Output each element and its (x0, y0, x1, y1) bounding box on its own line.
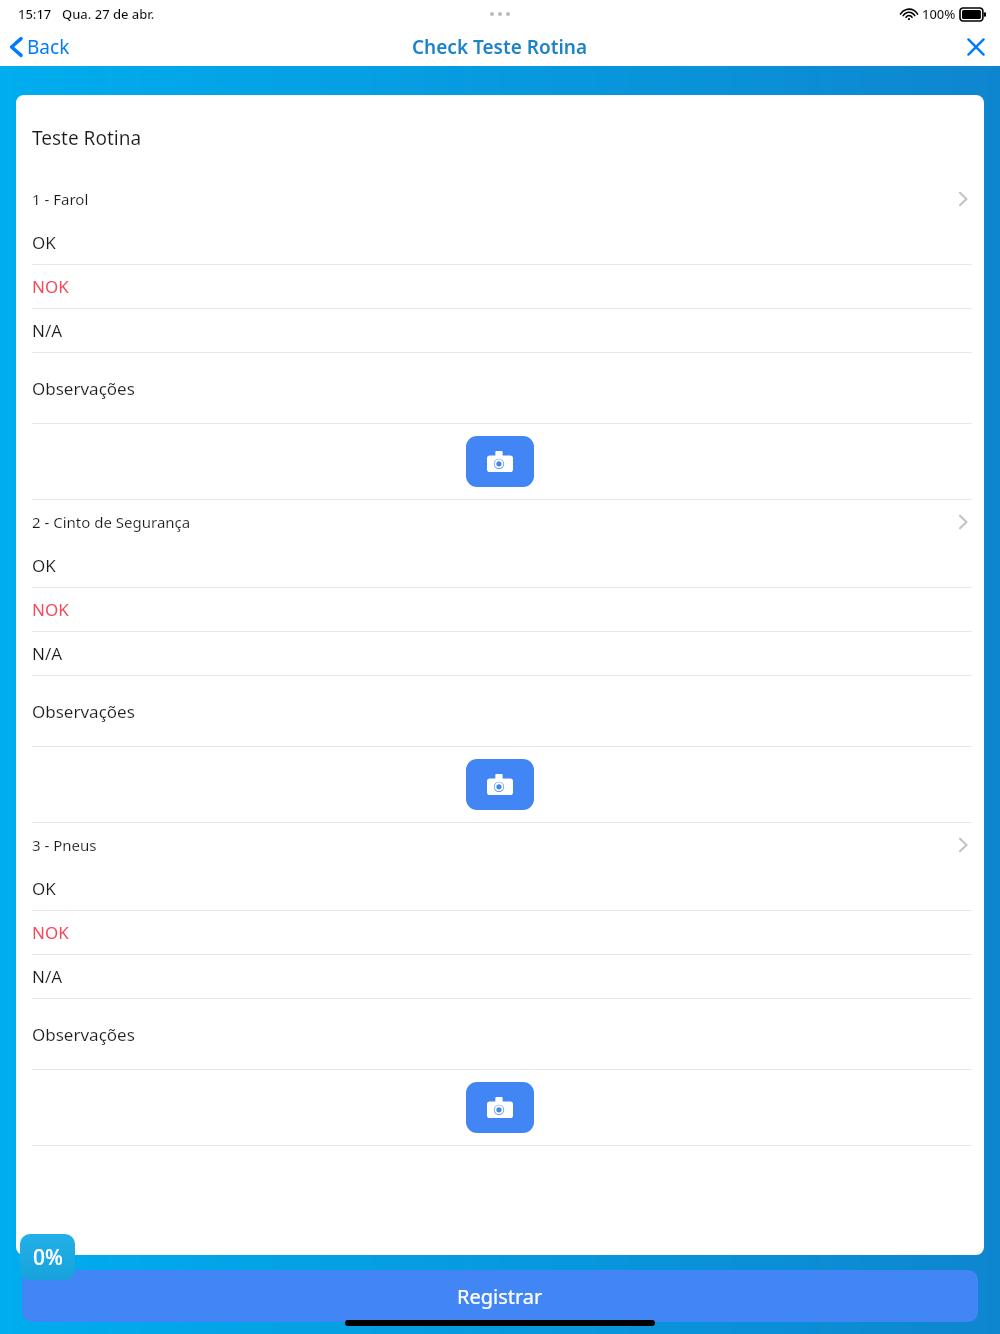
staticText: N/A (32, 319, 63, 342)
button[interactable]: Registrar (22, 1270, 978, 1322)
staticText: OK (32, 554, 56, 577)
button[interactable]: 2 - Cinto de Segurança (16, 500, 984, 544)
staticText: N/A (32, 965, 63, 988)
staticText: Qua. 27 de abr. (62, 5, 155, 23)
button[interactable]: N/A (16, 955, 984, 998)
staticText: N/A (32, 642, 63, 665)
staticText: Check Teste Rotina (412, 34, 588, 60)
button[interactable]: N/A (16, 309, 984, 352)
button[interactable]: Observações (16, 353, 984, 423)
staticText: Observações (32, 377, 135, 400)
button[interactable]: Tirar foto (466, 436, 534, 487)
staticText: 3 - Pneus (32, 835, 97, 855)
button[interactable]: Tirar foto (466, 1082, 534, 1133)
staticText: NOK (32, 275, 69, 298)
staticText: 2 - Cinto de Segurança (32, 512, 191, 532)
staticText: Observações (32, 700, 135, 723)
staticText: 100% (922, 5, 956, 23)
button[interactable]: Close (952, 31, 1000, 63)
button[interactable]: NOK (16, 265, 984, 308)
button[interactable]: N/A (16, 632, 984, 675)
button[interactable]: Back (0, 30, 80, 64)
staticText: Registrar (457, 1283, 543, 1310)
staticText: Back (27, 34, 70, 60)
staticText: NOK (32, 598, 69, 621)
staticText: 0% (33, 1243, 63, 1272)
button[interactable]: 0% (20, 1234, 75, 1280)
staticText: OK (32, 877, 56, 900)
button[interactable]: 3 - Pneus (16, 823, 984, 867)
button[interactable]: Tirar foto (466, 759, 534, 810)
staticText: Teste Rotina (32, 125, 142, 151)
button[interactable]: Observações (16, 676, 984, 746)
button[interactable]: Observações (16, 999, 984, 1069)
staticText: NOK (32, 921, 69, 944)
button[interactable]: 1 - Farol (16, 177, 984, 221)
button[interactable]: OK (16, 544, 984, 587)
button[interactable]: OK (16, 221, 984, 264)
button[interactable]: NOK (16, 911, 984, 954)
button[interactable]: NOK (16, 588, 984, 631)
staticText: 1 - Farol (32, 189, 89, 209)
staticText: OK (32, 231, 56, 254)
staticText: 15:17 (18, 5, 52, 23)
button[interactable]: OK (16, 867, 984, 910)
staticText: Observações (32, 1023, 135, 1046)
